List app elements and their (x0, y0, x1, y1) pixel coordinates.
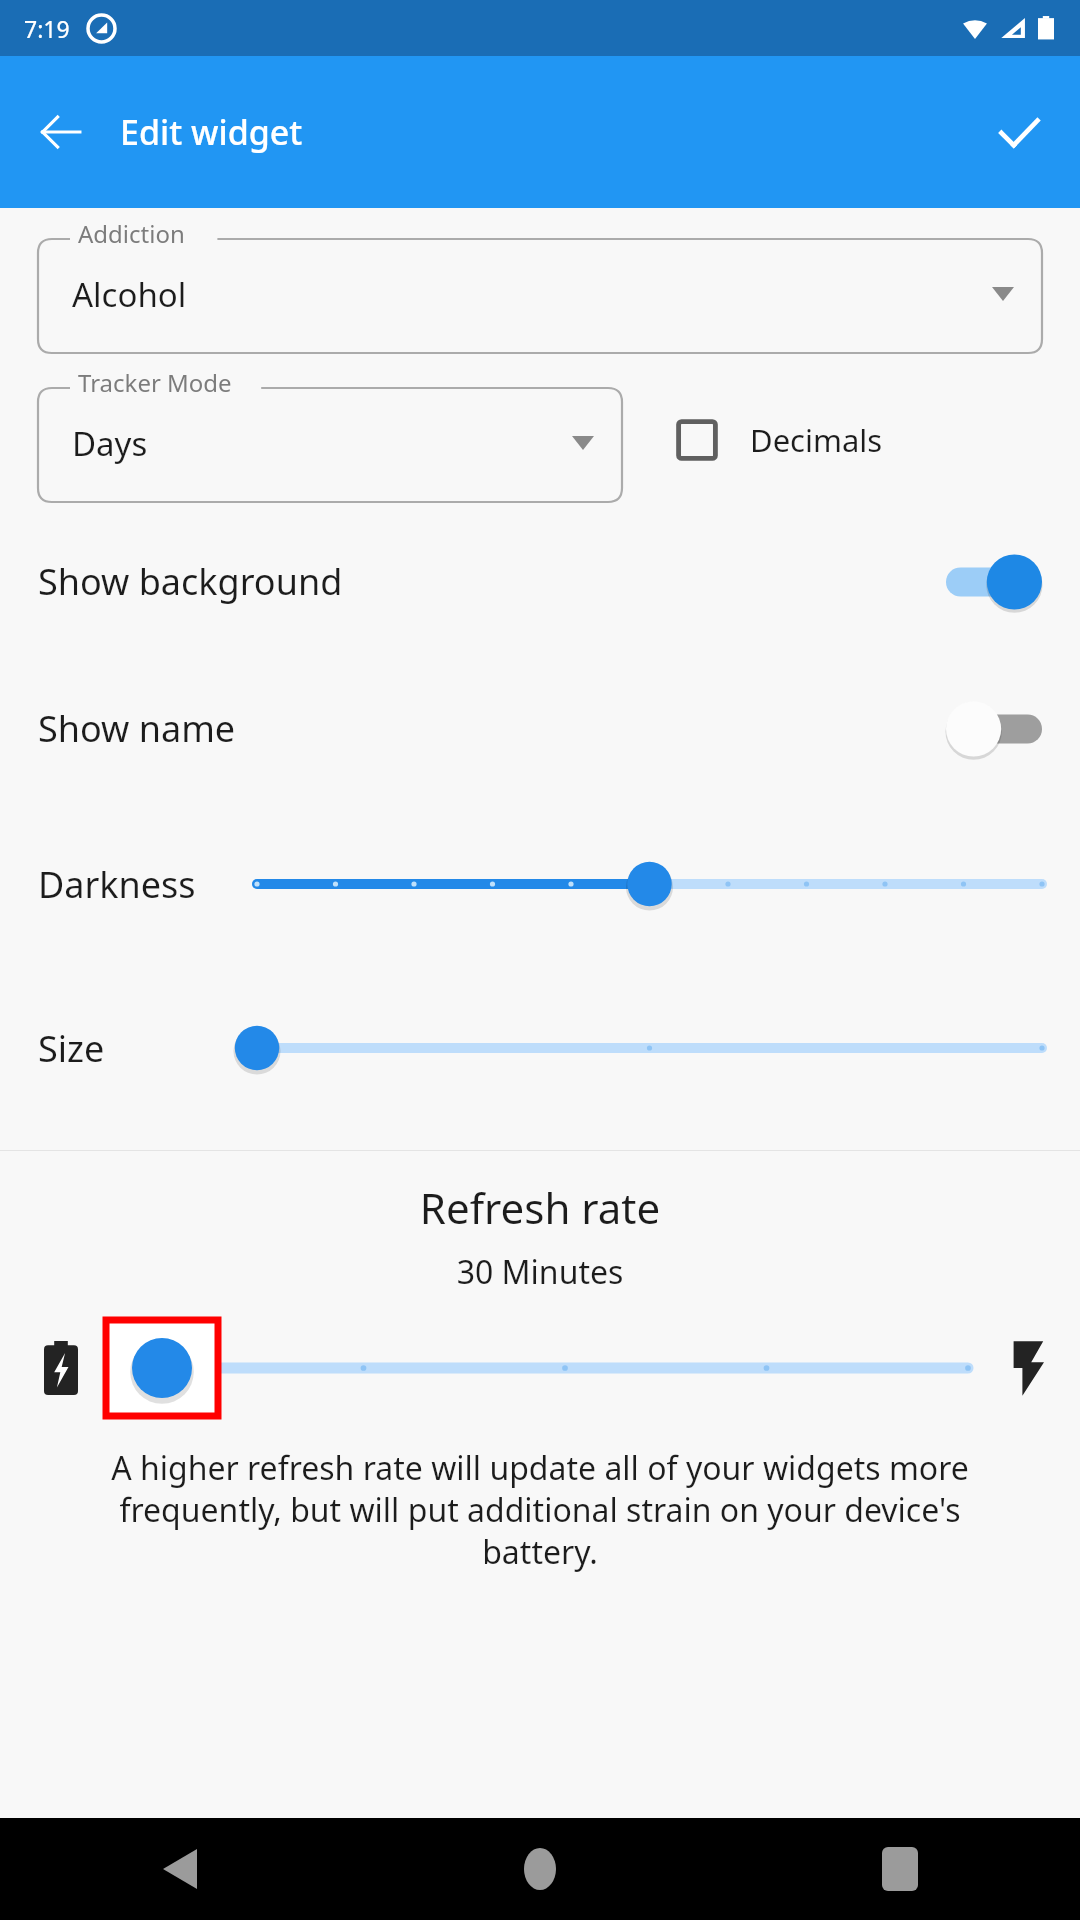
staticText: Size (38, 1024, 105, 1073)
button[interactable]: Show background (0, 508, 1080, 655)
button[interactable]: Size (0, 966, 1080, 1130)
button[interactable]: Decimals (674, 417, 883, 463)
staticText: 7:19 (24, 13, 70, 44)
staticText: 30 Minutes (0, 1250, 1080, 1294)
staticText: Edit widget (120, 109, 303, 155)
button[interactable]: Recent apps (720, 1818, 1080, 1920)
button[interactable]: Tracker Mode (38, 378, 622, 502)
button[interactable]: Home (360, 1818, 720, 1920)
staticText: A higher refresh rate will update all of… (74, 1446, 1006, 1573)
staticText: Decimals (750, 419, 883, 461)
button[interactable]: Addiction (38, 229, 1042, 353)
staticText: Show name (38, 704, 236, 753)
staticText: Darkness (38, 860, 196, 909)
button[interactable]: Save (984, 97, 1054, 167)
staticText: Refresh rate (0, 1179, 1080, 1236)
staticText: Days (72, 421, 148, 466)
staticText: Addiction (78, 217, 185, 250)
staticText: Show background (38, 557, 343, 606)
button[interactable]: Show name (0, 655, 1080, 802)
button[interactable]: Back (0, 1818, 360, 1920)
staticText: Alcohol (72, 272, 187, 317)
staticText: Tracker Mode (78, 366, 232, 399)
button[interactable]: Darkness (0, 802, 1080, 966)
button[interactable]: Back (30, 101, 92, 163)
